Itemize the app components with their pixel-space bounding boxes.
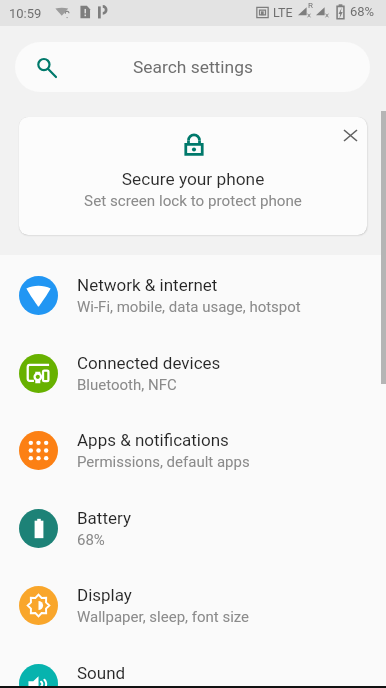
button[interactable]: Search settings xyxy=(15,42,370,92)
staticText: LTE xyxy=(273,5,293,20)
button[interactable]: Sound xyxy=(0,644,386,688)
button[interactable]: Display xyxy=(0,566,386,644)
staticText: Connected devices xyxy=(77,353,221,373)
button[interactable]: Battery xyxy=(0,489,386,567)
button[interactable]: Connected devices xyxy=(0,334,386,412)
staticText: Battery xyxy=(77,508,131,528)
button[interactable]: Apps & notifications xyxy=(0,411,386,489)
staticText: Search settings xyxy=(133,57,253,77)
staticText: Apps & notifications xyxy=(77,430,229,450)
staticText: Secure your phone xyxy=(19,169,367,189)
staticText: 68% xyxy=(350,4,375,19)
staticText: Network & internet xyxy=(77,275,218,295)
button[interactable]: Network & internet xyxy=(0,256,386,334)
staticText: 68% xyxy=(77,531,105,549)
staticText: Wi-Fi, mobile, data usage, hotspot xyxy=(77,298,301,316)
button[interactable]: Secure your phone xyxy=(19,117,367,235)
staticText: R xyxy=(308,1,313,10)
staticText: Set screen lock to protect phone xyxy=(19,192,367,210)
staticText: Wallpaper, sleep, font size xyxy=(77,608,250,626)
staticText: Bluetooth, NFC xyxy=(77,376,177,394)
staticText: Display xyxy=(77,585,132,605)
staticText: 10:59 xyxy=(9,6,42,21)
staticText: Permissions, default apps xyxy=(77,453,250,471)
button[interactable]: Dismiss xyxy=(334,119,366,151)
staticText: Sound xyxy=(77,663,126,683)
